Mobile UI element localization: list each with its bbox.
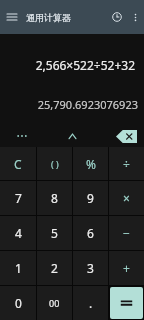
button[interactable]: . xyxy=(73,286,108,320)
button[interactable] xyxy=(110,287,143,319)
staticText: . xyxy=(89,295,93,311)
staticText: 8 xyxy=(51,190,58,206)
staticText: % xyxy=(86,156,96,172)
staticText: C xyxy=(14,156,22,172)
staticText: 4 xyxy=(15,225,22,241)
button[interactable]: 9 xyxy=(73,181,108,215)
button[interactable]: C xyxy=(0,147,36,180)
button[interactable]: − xyxy=(109,216,144,250)
staticText: 6 xyxy=(87,225,94,241)
staticText: ÷ xyxy=(123,156,130,172)
button[interactable]: % xyxy=(73,147,108,180)
staticText: × xyxy=(123,190,130,206)
staticText: 5 xyxy=(51,225,58,241)
button[interactable]: 2 xyxy=(37,251,72,285)
button[interactable]: More options xyxy=(127,9,143,25)
button[interactable]: Menu xyxy=(2,7,22,27)
button[interactable]: 5 xyxy=(37,216,72,250)
button[interactable]: 00 xyxy=(37,286,72,320)
button[interactable]: Backspace xyxy=(116,130,137,143)
staticText: 通用计算器 xyxy=(26,12,71,23)
button[interactable]: 3 xyxy=(73,251,108,285)
button[interactable]: 7 xyxy=(0,181,36,215)
button[interactable]: 6 xyxy=(73,216,108,250)
button[interactable]: 1 xyxy=(0,251,36,285)
staticText: 25,790.6923076923 xyxy=(37,97,138,112)
staticText: 9 xyxy=(87,190,94,206)
staticText: 3 xyxy=(87,260,94,276)
button[interactable]: ( ) xyxy=(37,147,72,180)
button[interactable]: Power xyxy=(61,125,83,147)
staticText: 2,566×522÷52+32 xyxy=(0,57,135,73)
button[interactable]: ÷ xyxy=(109,147,144,180)
staticText: − xyxy=(123,225,130,241)
staticText: + xyxy=(123,260,130,276)
button[interactable]: 4 xyxy=(0,216,36,250)
button[interactable]: 0 xyxy=(0,286,36,320)
button[interactable]: History xyxy=(107,7,127,27)
button[interactable]: + xyxy=(109,251,144,285)
staticText: ( ) xyxy=(51,158,59,170)
button[interactable]: × xyxy=(109,181,144,215)
button[interactable]: 8 xyxy=(37,181,72,215)
staticText: 1 xyxy=(15,260,22,276)
staticText: 7 xyxy=(15,190,22,206)
button[interactable]: More functions xyxy=(11,125,33,147)
staticText: 0 xyxy=(15,295,22,311)
staticText: 2 xyxy=(51,260,58,276)
staticText: 00 xyxy=(49,297,60,309)
